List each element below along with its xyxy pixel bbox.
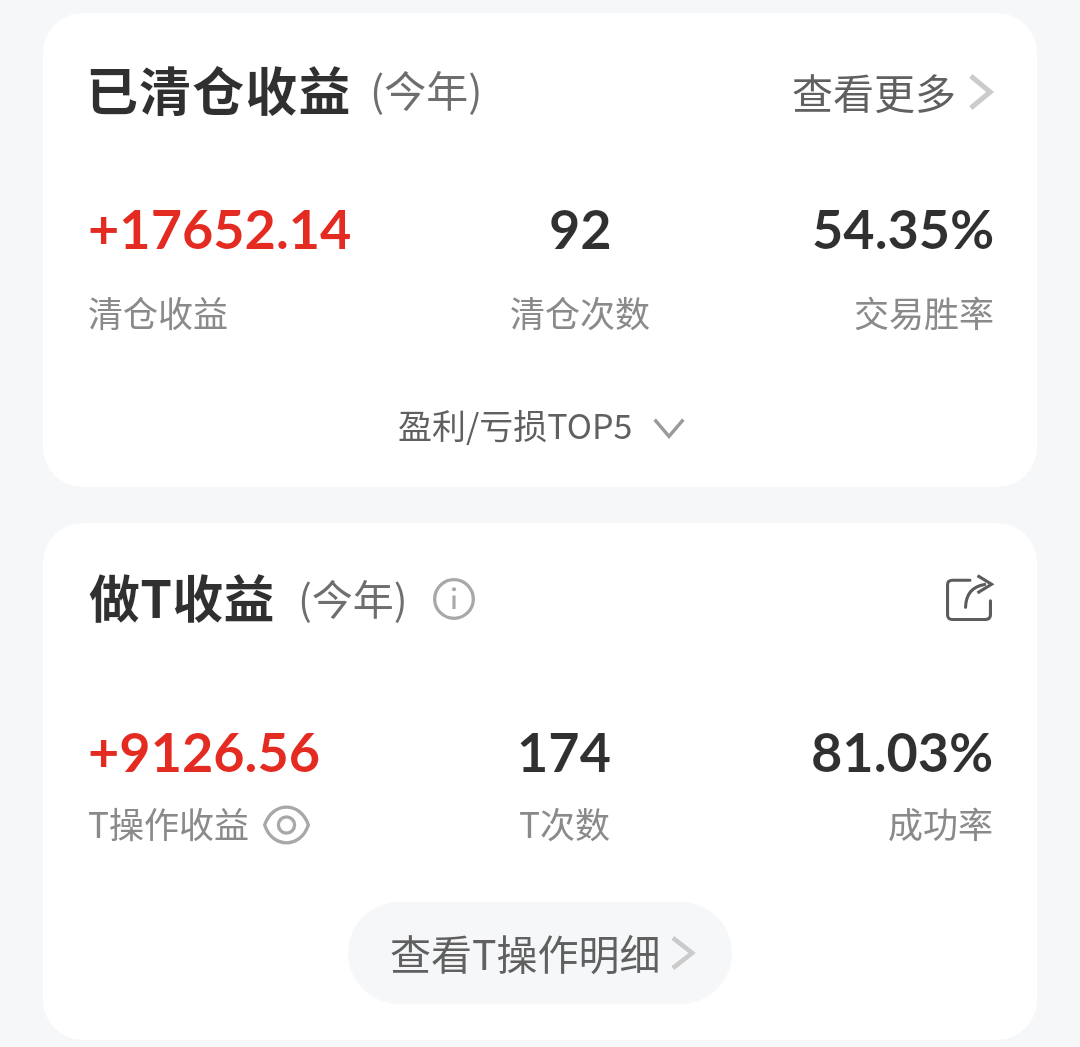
staticText: 清仓次数 [510,286,651,337]
button[interactable]: Share [946,575,992,621]
staticText: 成功率 [888,797,994,848]
button[interactable]: Toggle amount visibility [263,807,310,843]
button[interactable]: 查看更多 [792,55,996,126]
staticText: +9126.56 [88,719,321,784]
staticText: (今年) [298,567,408,626]
staticText: 做T收益 [89,559,275,633]
staticText: T操作收益 [88,797,249,848]
staticText: 清仓收益 [88,286,229,337]
staticText: 174 [517,719,611,784]
button[interactable]: 查看T操作明细 [348,902,732,1004]
staticText: 交易胜率 [854,286,995,337]
button[interactable]: 盈利/亏损TOP5 [388,392,696,457]
staticText: 92 [549,196,612,261]
staticText: 54.35% [812,196,995,261]
staticText: 盈利/亏损TOP5 [398,400,633,449]
staticText: 已清仓收益 [86,51,352,126]
staticText: 查看T操作明细 [390,922,661,981]
staticText: 查看更多 [792,61,956,120]
staticText: T次数 [519,797,610,848]
staticText: 81.03% [811,719,994,784]
button[interactable]: Info [433,578,475,620]
staticText: (今年) [370,58,483,119]
staticText: +17652.14 [88,196,352,261]
